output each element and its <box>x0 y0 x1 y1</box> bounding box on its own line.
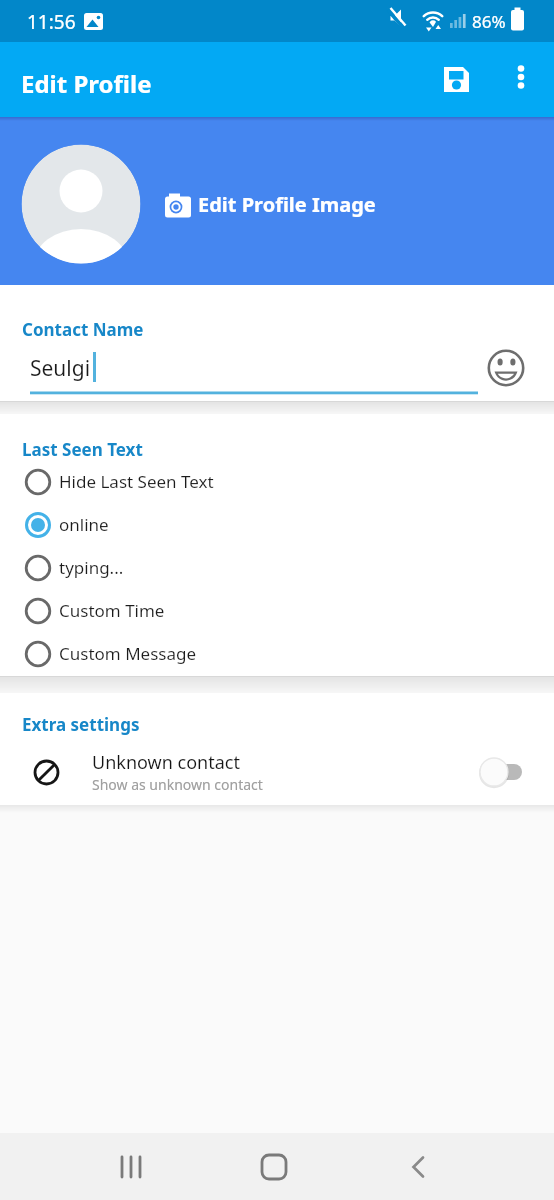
button[interactable] <box>21 144 141 264</box>
button[interactable] <box>432 55 482 105</box>
staticText: Last Seen Text <box>22 438 143 461</box>
staticText: Unknown contact <box>92 750 240 775</box>
button[interactable]: typing... <box>0 546 554 589</box>
button[interactable]: online <box>0 503 554 546</box>
staticText: 86% <box>472 10 506 33</box>
staticText: Extra settings <box>22 713 140 736</box>
staticText: Show as unknown contact <box>92 775 263 794</box>
button[interactable]: Custom Time <box>0 589 554 632</box>
staticText: Seulgi <box>30 354 91 383</box>
staticText: online <box>59 513 109 536</box>
button[interactable]: Custom Message <box>0 632 554 675</box>
staticText: 11:56 <box>27 9 76 35</box>
button[interactable] <box>103 1139 158 1194</box>
staticText: Edit Profile <box>21 67 152 100</box>
staticText: Hide Last Seen Text <box>59 470 214 493</box>
staticText: Custom Time <box>59 599 165 622</box>
staticText: Edit Profile Image <box>198 191 376 218</box>
button[interactable]: Unknown contact <box>0 745 554 799</box>
button[interactable] <box>478 749 540 795</box>
button[interactable]: Edit Profile Image <box>160 189 376 219</box>
button[interactable]: Seulgi <box>22 348 486 398</box>
button[interactable] <box>487 349 527 389</box>
button[interactable] <box>390 1139 445 1194</box>
staticText: Contact Name <box>22 318 144 341</box>
button[interactable] <box>499 55 543 99</box>
button[interactable]: Hide Last Seen Text <box>0 460 554 503</box>
button[interactable] <box>246 1139 301 1194</box>
staticText: typing... <box>59 556 124 579</box>
staticText: Custom Message <box>59 642 197 665</box>
